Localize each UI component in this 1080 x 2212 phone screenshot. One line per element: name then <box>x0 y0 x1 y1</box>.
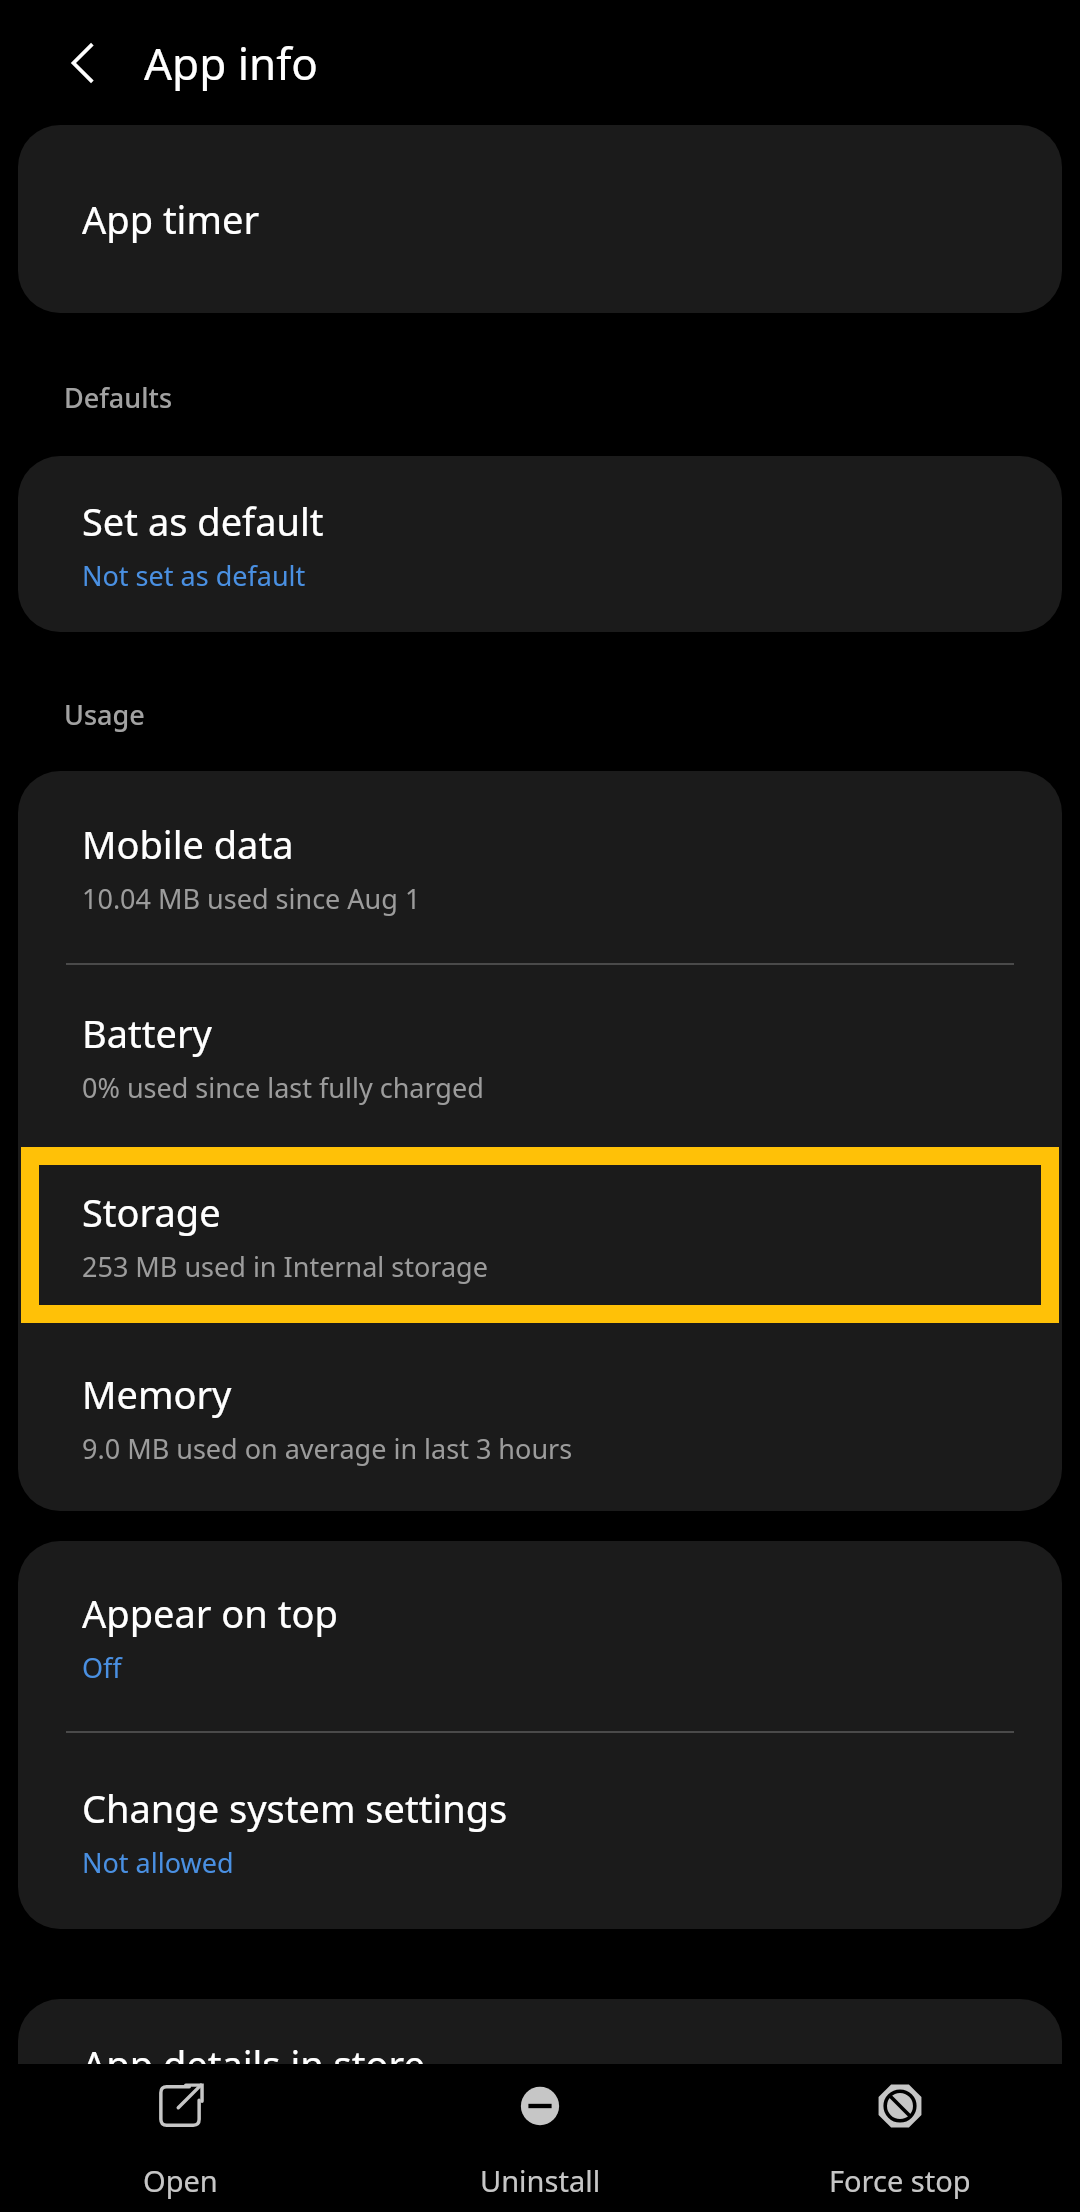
button[interactable]: Storage <box>21 1147 1059 1323</box>
staticText: Off <box>82 1649 122 1686</box>
staticText: 253 MB used in Internal storage <box>82 1248 488 1285</box>
staticText: App info <box>144 33 318 93</box>
staticText: 9.0 MB used on average in last 3 hours <box>82 1430 573 1467</box>
staticText: Not set as default <box>82 557 306 594</box>
staticText: Appear on top <box>82 1587 338 1639</box>
staticText: Uninstall <box>480 2161 601 2200</box>
button[interactable]: Change system settings <box>18 1733 1062 1929</box>
staticText: 10.04 MB used since Aug 1 <box>82 880 421 917</box>
staticText: Defaults <box>64 379 172 416</box>
staticText: App timer <box>82 193 260 245</box>
button[interactable]: Mobile data <box>18 771 1062 963</box>
button[interactable]: Memory <box>18 1323 1062 1511</box>
button[interactable]: Set as default <box>18 456 1062 632</box>
button[interactable]: Battery <box>18 965 1062 1147</box>
staticText: Mobile data <box>82 818 294 870</box>
staticText: Storage <box>82 1186 221 1238</box>
staticText: Force stop <box>829 2161 971 2200</box>
button[interactable]: Open <box>0 2064 360 2212</box>
staticText: Usage <box>64 696 145 733</box>
staticText: App details in store <box>82 2038 425 2090</box>
button[interactable]: App timer <box>18 125 1062 313</box>
staticText: Change system settings <box>82 1782 508 1834</box>
staticText: Memory <box>82 1368 232 1420</box>
staticText: Open <box>143 2161 218 2200</box>
staticText: 0% used since last fully charged <box>82 1069 484 1106</box>
button[interactable]: Force stop <box>720 2064 1080 2212</box>
button[interactable]: Uninstall <box>360 2064 720 2212</box>
staticText: Battery <box>82 1007 212 1059</box>
staticText: App downloaded from Google Play Store <box>82 2100 597 2137</box>
button[interactable]: Appear on top <box>18 1541 1062 1731</box>
staticText: Not allowed <box>82 1844 234 1881</box>
staticText: Set as default <box>82 495 324 547</box>
button[interactable]: Back <box>52 31 116 95</box>
button[interactable]: App details in store <box>18 1999 1062 2175</box>
